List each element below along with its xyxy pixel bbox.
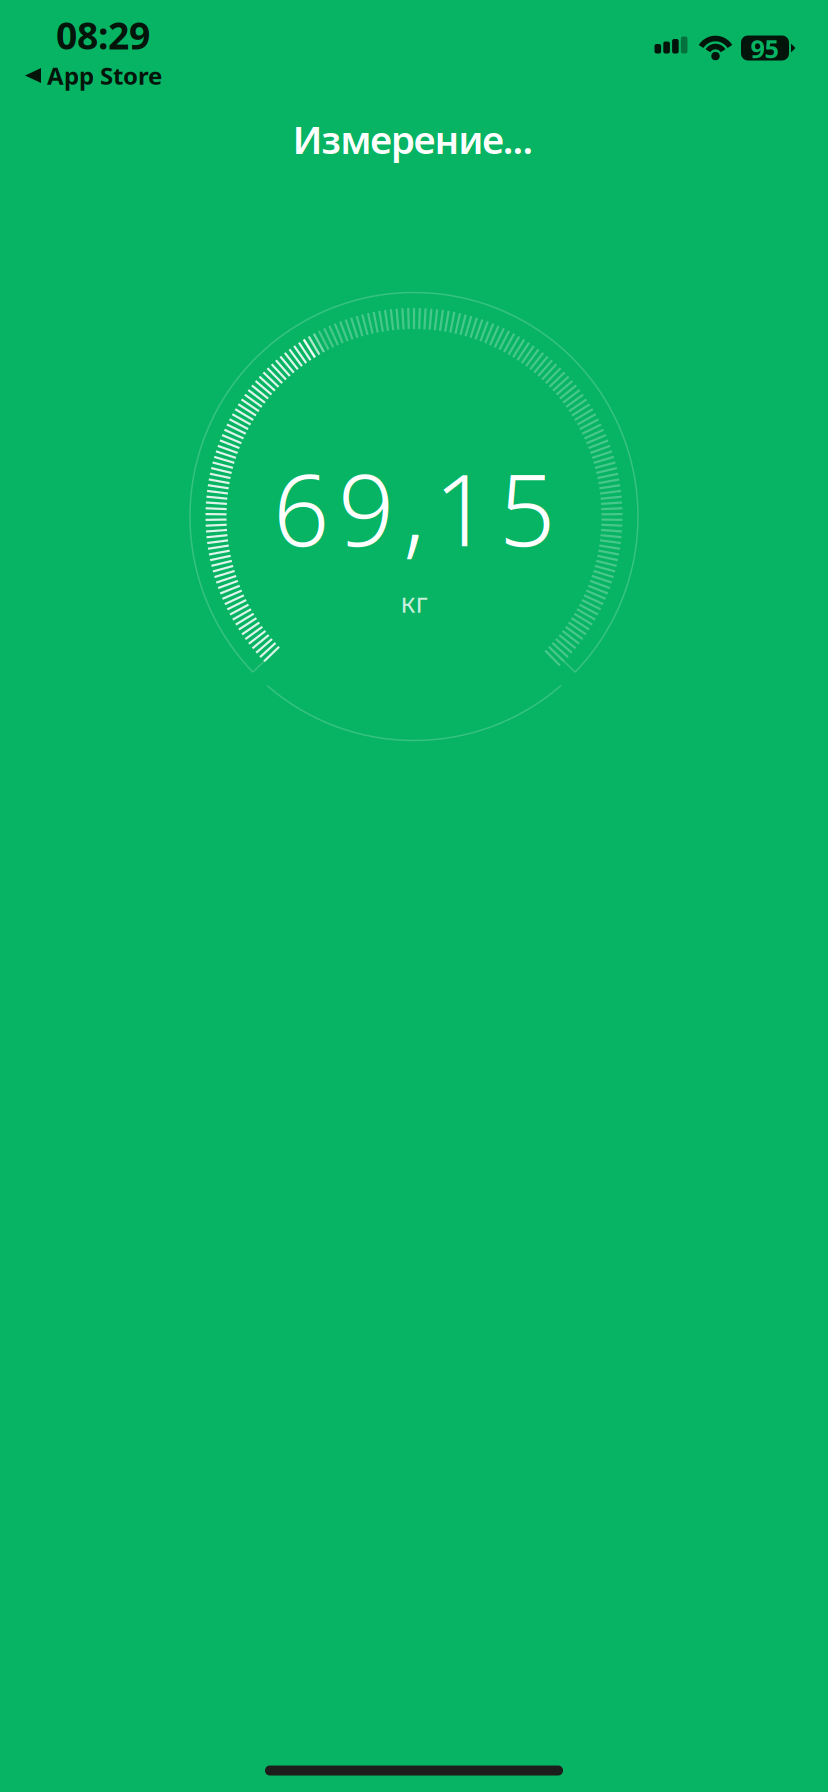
staticText: 08:29 — [56, 10, 150, 60]
staticText: Измерение... — [293, 113, 533, 165]
button[interactable]: App Store — [25, 58, 175, 92]
staticText: App Store — [47, 60, 162, 91]
staticText: 69,15 — [273, 442, 555, 573]
staticText: кг — [400, 583, 427, 621]
staticText: 95 — [750, 32, 778, 65]
